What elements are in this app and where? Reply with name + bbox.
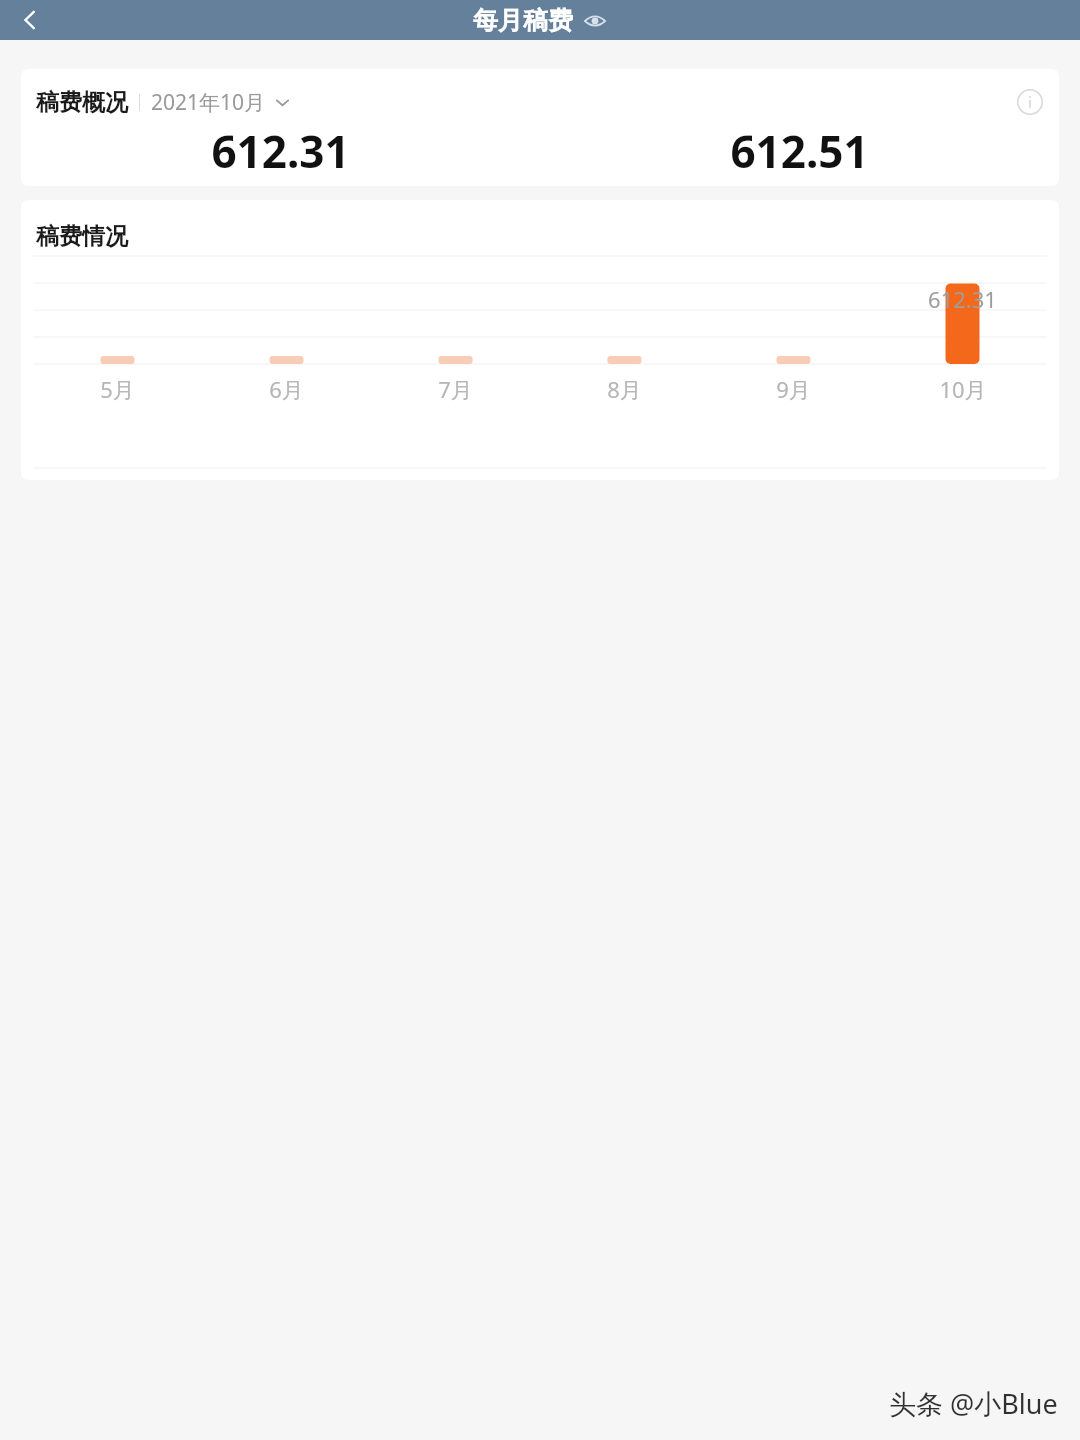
staticText: 9月	[776, 374, 811, 404]
staticText: 每月稿费	[473, 5, 573, 36]
staticText: 10月	[939, 374, 987, 404]
staticText: 7月	[438, 374, 473, 404]
staticText: 612.51	[730, 121, 869, 181]
staticText: 6月	[269, 374, 304, 404]
button[interactable]: 2021年10月	[151, 88, 290, 117]
button[interactable]: Toggle amount visibility	[582, 8, 608, 34]
staticText: 稿费情况	[36, 222, 128, 251]
staticText: 头条 @小Blue	[889, 1385, 1058, 1422]
staticText: 612.31	[928, 284, 997, 314]
button[interactable]: Back	[12, 2, 48, 38]
button[interactable]: Info	[1014, 86, 1046, 118]
staticText: 612.31	[211, 121, 350, 181]
staticText: 8月	[607, 374, 642, 404]
staticText: 5月	[100, 374, 135, 404]
staticText: 2021年10月	[151, 88, 266, 117]
staticText: 稿费概况	[36, 88, 128, 117]
